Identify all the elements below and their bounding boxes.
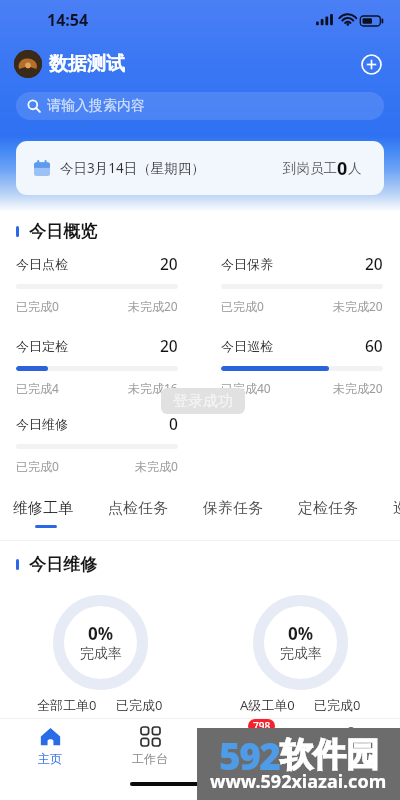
staticText: 全部工单0 — [37, 696, 97, 714]
staticText: 20 — [365, 253, 383, 274]
button[interactable]: 巡检任务 — [393, 496, 400, 541]
staticText: 已完成40 — [221, 380, 271, 396]
button[interactable]: 定检任务 — [298, 496, 393, 541]
staticText: 已完成0 — [16, 298, 59, 314]
button[interactable]: 今日3月14日（星期四） — [16, 141, 384, 195]
staticText: 0% — [88, 622, 114, 645]
button[interactable]: Add — [356, 49, 386, 79]
staticText: 未完成0 — [135, 458, 178, 474]
staticText: 60 — [365, 335, 383, 356]
button[interactable]: 主页 — [0, 719, 100, 772]
staticText: 20 — [160, 253, 178, 274]
staticText: 已完成0 — [221, 298, 264, 314]
staticText: 14:54 — [47, 9, 89, 31]
staticText: 798 — [253, 719, 271, 733]
staticText: 0 — [337, 156, 348, 181]
staticText: 今日3月14日（星期四） — [60, 159, 205, 177]
staticText: 请输入搜索内容 — [47, 97, 145, 115]
staticText: 今日维修 — [29, 554, 97, 575]
staticText: 今日维修 — [16, 416, 68, 432]
staticText: 定检任务 — [298, 499, 358, 518]
button[interactable]: 请输入搜索内容 — [16, 92, 384, 120]
staticText: 已完成0 — [314, 696, 361, 714]
button[interactable]: 点检任务 — [108, 496, 203, 541]
button[interactable]: 工作台 — [100, 719, 200, 772]
staticText: 未完成20 — [128, 298, 178, 314]
staticText: 维修工单 — [13, 499, 73, 518]
staticText: 完成率 — [80, 645, 122, 663]
staticText: 人 — [348, 160, 362, 177]
staticText: 巡检任务 — [393, 499, 400, 518]
staticText: 主页 — [38, 751, 62, 766]
staticText: 未完成20 — [333, 298, 383, 314]
staticText: 已完成0 — [16, 458, 59, 474]
button[interactable]: 维修工单 — [13, 496, 108, 541]
button[interactable]: 消息 — [200, 719, 300, 772]
staticText: 0% — [288, 622, 314, 645]
staticText: 我的 — [338, 751, 362, 766]
staticText: 消息 — [238, 751, 262, 766]
staticText: 登录成功 — [173, 392, 233, 411]
staticText: 今日概览 — [29, 221, 97, 242]
staticText: 到岗员工 — [283, 160, 337, 177]
staticText: 已完成4 — [16, 380, 59, 396]
button[interactable]: 保养任务 — [203, 496, 298, 541]
button[interactable]: 我的 — [300, 719, 400, 772]
staticText: 今日巡检 — [221, 338, 273, 354]
staticText: www.592xiazai.com — [210, 769, 387, 794]
staticText: 保养任务 — [203, 499, 263, 518]
staticText: 今日保养 — [221, 256, 273, 272]
button[interactable]: Profile — [14, 50, 42, 78]
staticText: A级工单0 — [240, 696, 295, 714]
staticText: 工作台 — [132, 751, 168, 766]
staticText: 20 — [160, 335, 178, 356]
staticText: 今日点检 — [16, 256, 68, 272]
staticText: 592 — [219, 730, 280, 780]
staticText: 0 — [169, 413, 178, 434]
staticText: 完成率 — [280, 645, 322, 663]
staticText: 点检任务 — [108, 499, 168, 518]
staticText: 今日定检 — [16, 338, 68, 354]
staticText: 未完成16 — [128, 380, 178, 396]
staticText: 未完成20 — [333, 380, 383, 396]
staticText: 已完成0 — [116, 696, 163, 714]
staticText: 数据测试 — [49, 52, 125, 76]
staticText: 软件园 — [280, 734, 379, 776]
